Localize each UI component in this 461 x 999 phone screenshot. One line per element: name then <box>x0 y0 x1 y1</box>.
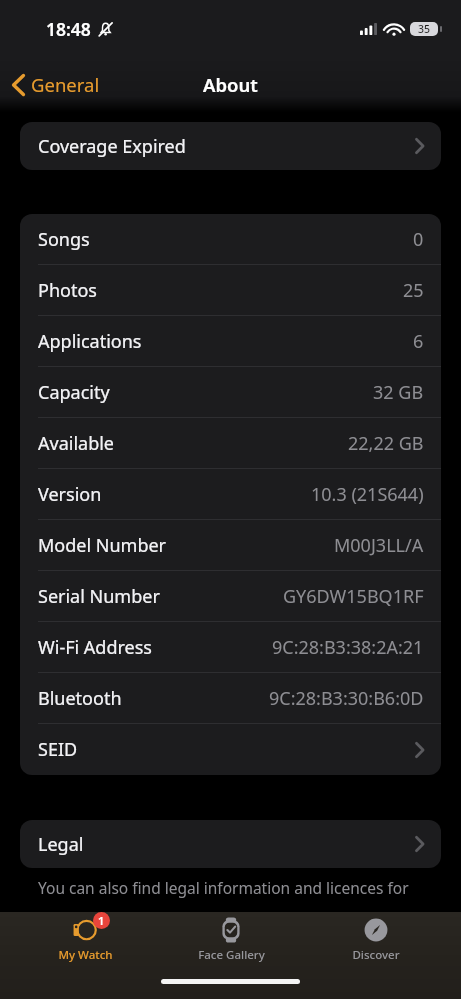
staticText: Face Gallery <box>198 947 265 963</box>
staticText: 1 <box>98 913 105 928</box>
button[interactable]: Version <box>20 469 441 520</box>
button[interactable]: Capacity <box>20 367 441 418</box>
staticText: Applications <box>38 329 142 354</box>
button[interactable]: Face Gallery <box>171 912 291 963</box>
button[interactable]: Discover <box>316 912 436 963</box>
staticText: General <box>31 72 100 97</box>
button[interactable]: Coverage Expired <box>20 122 441 170</box>
button[interactable]: 1 <box>25 912 145 963</box>
staticText: Legal <box>38 832 84 857</box>
staticText: My Watch <box>58 947 113 963</box>
staticText: Bluetooth <box>38 686 122 711</box>
button[interactable]: SEID <box>20 724 441 775</box>
staticText: About <box>203 72 258 97</box>
button[interactable]: Applications <box>20 316 441 367</box>
staticText: M00J3LL/A <box>334 533 424 558</box>
staticText: Wi-Fi Address <box>38 635 152 660</box>
button[interactable]: Bluetooth <box>20 673 441 724</box>
staticText: Songs <box>38 227 90 252</box>
staticText: Available <box>38 431 114 456</box>
staticText: You can also find legal information and … <box>38 877 409 898</box>
staticText: Capacity <box>38 380 110 405</box>
staticText: Model Number <box>38 533 167 558</box>
staticText: SEID <box>38 737 78 762</box>
staticText: 32 GB <box>373 380 424 405</box>
staticText: 35 <box>418 22 431 36</box>
button[interactable]: Legal <box>20 820 441 868</box>
button[interactable]: Model Number <box>20 520 441 571</box>
button[interactable]: Serial Number <box>20 571 441 622</box>
staticText: Serial Number <box>38 584 160 609</box>
staticText: 18:48 <box>46 17 91 41</box>
staticText: Photos <box>38 278 97 303</box>
button[interactable]: General <box>8 68 104 101</box>
button[interactable]: Photos <box>20 265 441 316</box>
staticText: 10.3 (21S644) <box>311 482 424 507</box>
staticText: Coverage Expired <box>38 134 186 159</box>
staticText: Version <box>38 482 102 507</box>
staticText: Discover <box>352 947 400 963</box>
staticText: 6 <box>413 329 424 354</box>
staticText: 9C:28:B3:30:B6:0D <box>269 686 424 711</box>
button[interactable]: Available <box>20 418 441 469</box>
staticText: 0 <box>413 227 424 252</box>
staticText: GY6DW15BQ1RF <box>283 584 424 609</box>
staticText: 22,22 GB <box>348 431 424 456</box>
staticText: 25 <box>403 278 424 303</box>
button[interactable]: Wi-Fi Address <box>20 622 441 673</box>
button[interactable]: Songs <box>20 214 441 265</box>
staticText: 9C:28:B3:38:2A:21 <box>272 635 424 660</box>
